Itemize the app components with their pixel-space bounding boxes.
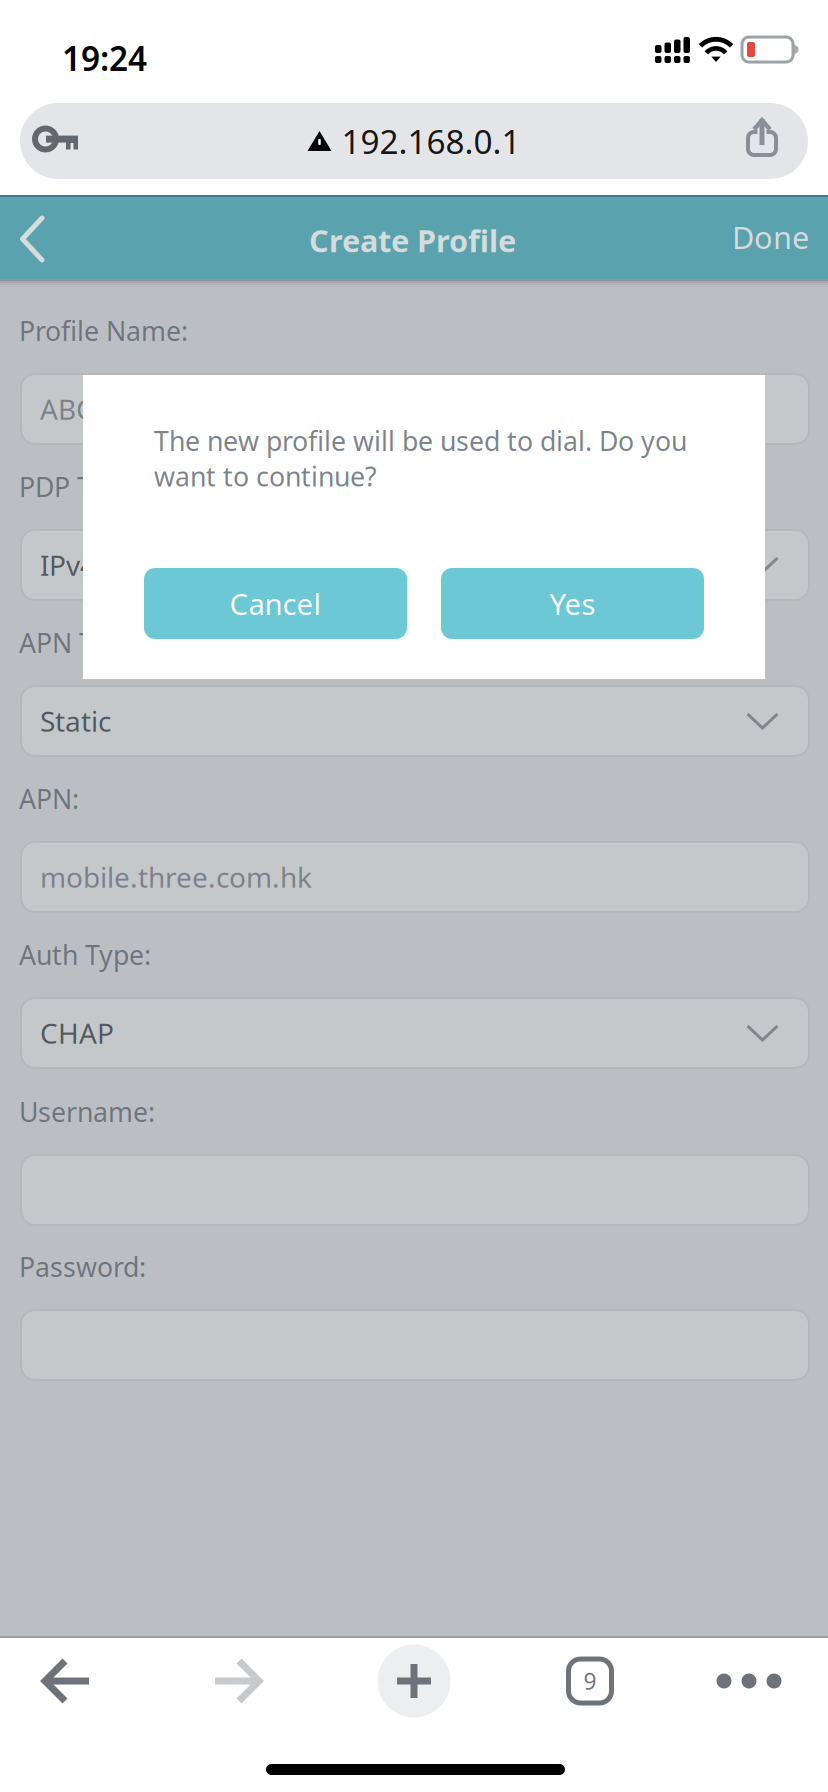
staticText: Yes — [549, 584, 595, 623]
button[interactable]: Saved password — [35, 128, 78, 150]
button[interactable]: More — [685, 1637, 813, 1725]
staticText: APN Type: — [19, 625, 145, 660]
button[interactable]: ABC — [21, 374, 809, 444]
staticText: The new profile will be used to dial. Do… — [154, 423, 687, 494]
staticText: Cancel — [229, 584, 321, 623]
button[interactable]: Forward — [173, 1637, 301, 1725]
staticText: PDP Type: — [19, 469, 143, 504]
staticText: Username: — [19, 1094, 155, 1129]
button[interactable]: Static — [21, 686, 809, 756]
staticText: 9 — [583, 1666, 596, 1696]
button[interactable]: 192.168.0.1 — [274, 103, 554, 179]
button[interactable]: Back — [20, 216, 45, 262]
button[interactable]: New Tab — [359, 1637, 469, 1725]
button[interactable]: mobile.three.com.hk — [21, 842, 809, 912]
button[interactable]: IPv4 — [21, 530, 809, 600]
staticText: Create Profile — [309, 220, 516, 261]
staticText: mobile.three.com.hk — [40, 858, 312, 896]
button[interactable]: Cancel — [144, 568, 407, 639]
button[interactable]: CHAP — [21, 998, 809, 1068]
staticText: Profile Name: — [19, 313, 188, 348]
button[interactable]: Share — [748, 119, 776, 156]
staticText: 19:24 — [62, 36, 147, 80]
staticText: Password: — [19, 1249, 146, 1284]
staticText: Auth Type: — [19, 937, 151, 972]
staticText: ABC — [40, 390, 94, 428]
staticText: IPv4 — [40, 546, 96, 584]
button[interactable]: Tabs — [535, 1637, 645, 1725]
button[interactable]: Done — [713, 195, 828, 279]
staticText: APN: — [19, 781, 79, 816]
staticText: Done — [732, 217, 809, 257]
staticText: CHAP — [40, 1014, 114, 1052]
staticText: 192.168.0.1 — [341, 119, 520, 163]
button[interactable]: Back — [3, 1637, 131, 1725]
staticText: Static — [40, 702, 111, 740]
button[interactable]: Yes — [441, 568, 704, 639]
